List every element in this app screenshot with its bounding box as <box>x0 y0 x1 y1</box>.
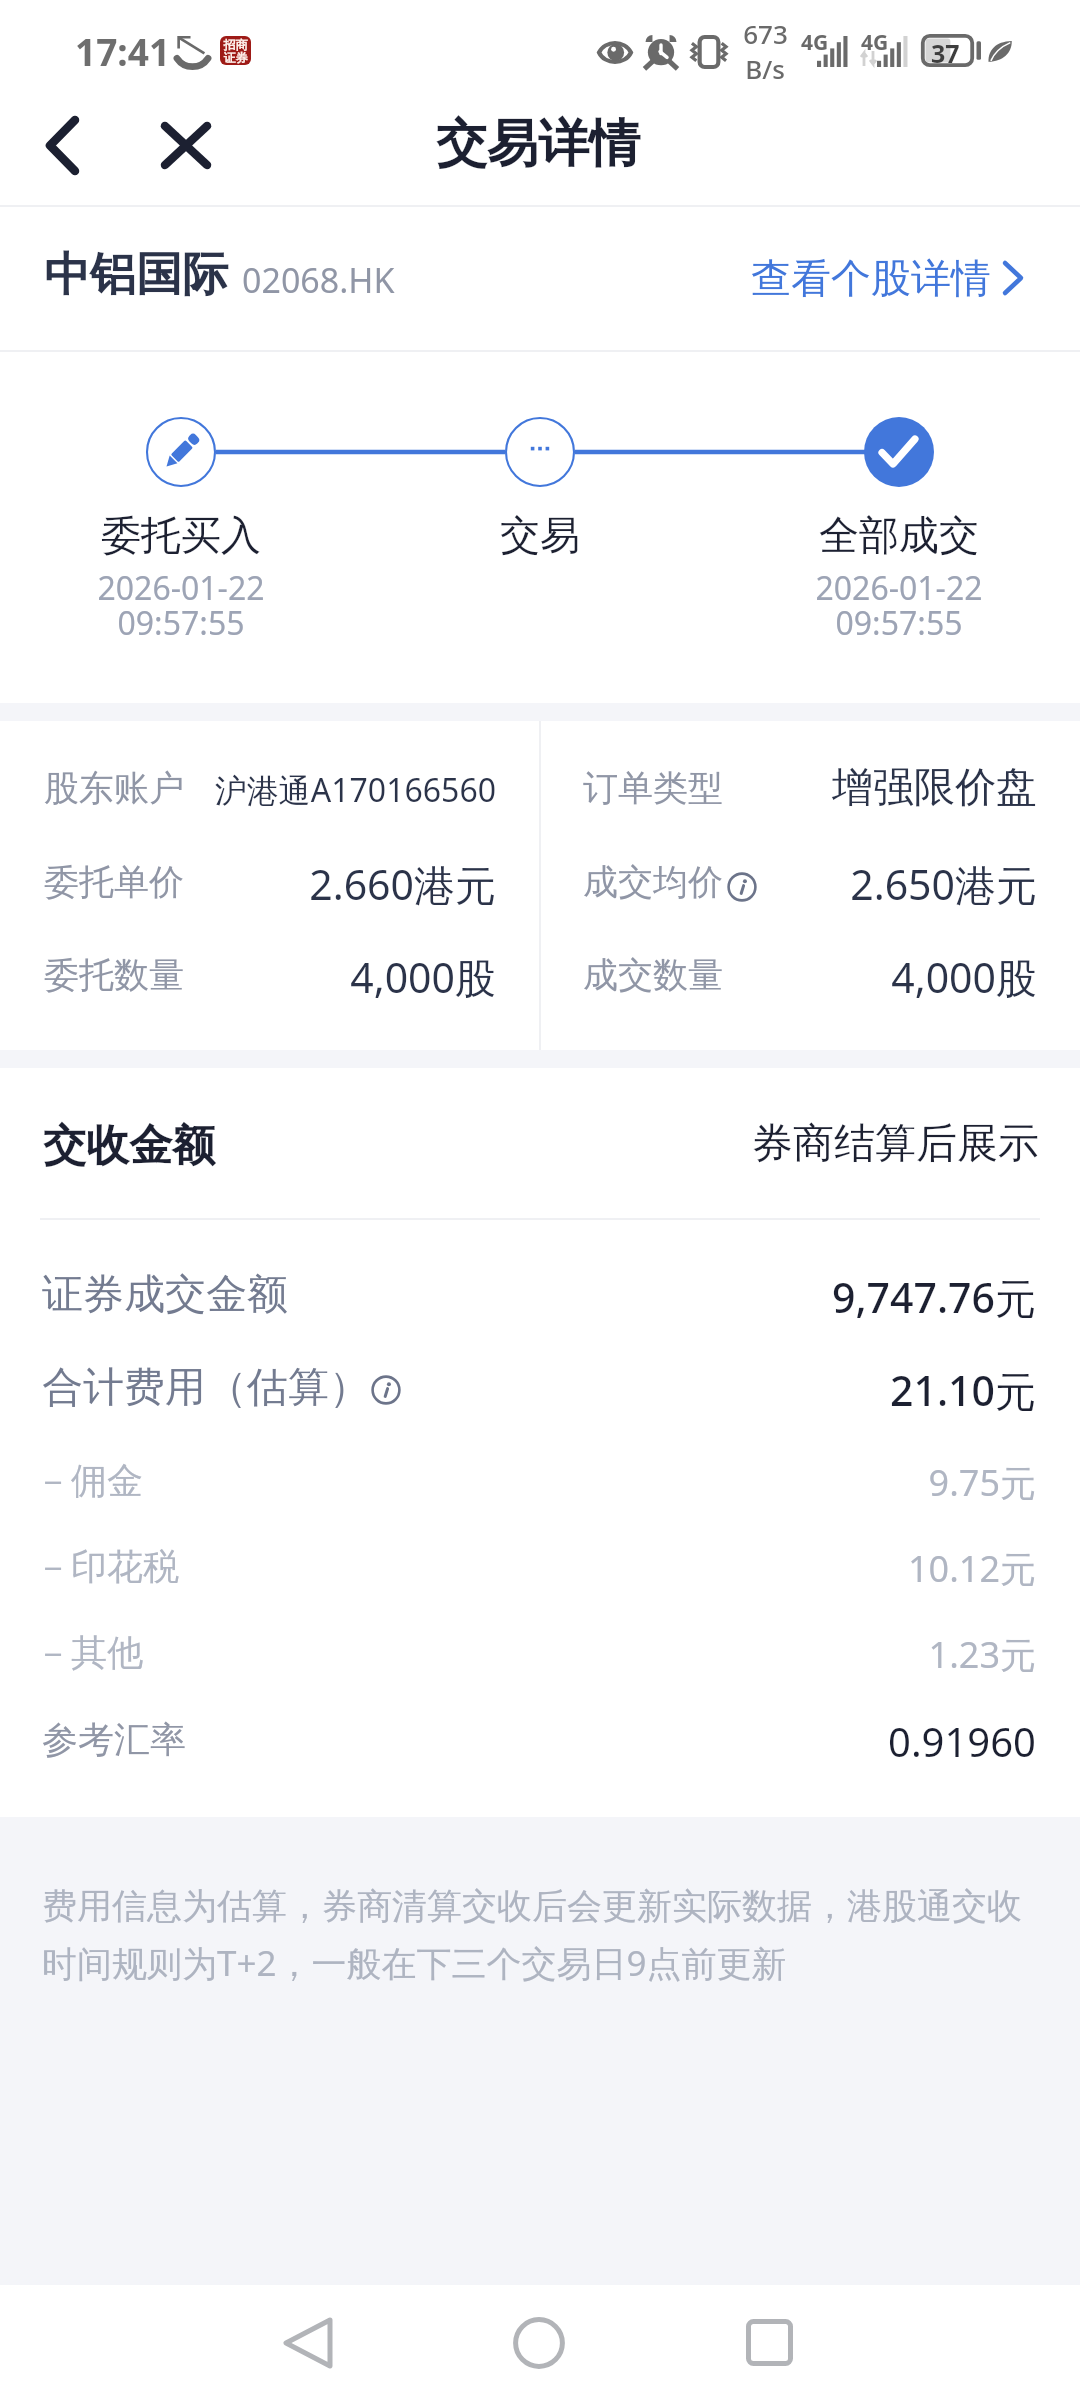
staticText: 费用信息为估算，券商清算交收后会更新实际数据，港股通交收 时间规则为T+2，一般… <box>42 1884 1052 1986</box>
staticText: 4,000股 <box>637 949 1037 1005</box>
staticText: 9,747.76元 <box>536 1269 1036 1325</box>
staticText: 2.660港元 <box>96 856 496 912</box>
staticText: 0.91960 <box>536 1714 1036 1768</box>
button[interactable]: Home <box>459 2285 619 2400</box>
staticText: 合计费用（估算） <box>42 1362 370 1414</box>
staticText: 交易 <box>380 510 700 560</box>
staticText: B/s <box>745 51 785 86</box>
staticText: 2026-01-22 09:57:55 <box>739 566 1059 645</box>
staticText: 10.12元 <box>536 1544 1036 1593</box>
staticText: 1.23元 <box>536 1630 1036 1679</box>
staticText: 4G <box>861 28 889 57</box>
button[interactable]: 查看个股详情 <box>735 232 1035 324</box>
staticText: 成交数量 <box>583 953 723 997</box>
button[interactable]: Recents <box>689 2285 849 2400</box>
staticText: 交易详情 <box>436 112 640 176</box>
staticText: 委托单价 <box>44 860 184 904</box>
staticText: －佣金 <box>35 1458 143 1503</box>
staticText: －其他 <box>35 1630 143 1675</box>
staticText: 9.75元 <box>536 1458 1036 1507</box>
staticText: 券商结算后展示 <box>539 1118 1039 1170</box>
staticText: 委托数量 <box>44 953 184 997</box>
staticText: 订单类型 <box>583 766 723 810</box>
staticText: 查看个股详情 <box>751 253 991 303</box>
staticText: －印花税 <box>35 1544 179 1589</box>
staticText: 4,000股 <box>96 949 496 1005</box>
staticText: 37 <box>931 36 960 69</box>
button[interactable]: Back <box>25 108 99 182</box>
button[interactable]: Close <box>148 108 224 182</box>
staticText: 中铝国际 <box>44 246 228 304</box>
button[interactable]: Back <box>228 2285 388 2400</box>
staticText: 2026-01-22 09:57:55 <box>21 566 341 645</box>
staticText: 沪港通A170166560 <box>76 768 496 812</box>
staticText: 17:41 <box>75 26 171 76</box>
staticText: 2.650港元 <box>637 856 1037 912</box>
staticText: 招商 证券 <box>222 37 249 65</box>
staticText: 21.10元 <box>536 1362 1036 1418</box>
staticText: 4G <box>801 28 829 57</box>
staticText: 增强限价盘 <box>637 762 1037 814</box>
staticText: 673 <box>743 16 788 51</box>
staticText: 委托买入 <box>21 510 341 560</box>
staticText: 成交均价 <box>583 860 723 904</box>
staticText: 交收金额 <box>43 1119 215 1173</box>
staticText: 股东账户 <box>44 766 184 810</box>
staticText: 参考汇率 <box>42 1717 186 1762</box>
staticText: 02068.HK <box>242 257 395 303</box>
staticText: 全部成交 <box>739 510 1059 560</box>
staticText: 证券成交金额 <box>42 1269 288 1321</box>
